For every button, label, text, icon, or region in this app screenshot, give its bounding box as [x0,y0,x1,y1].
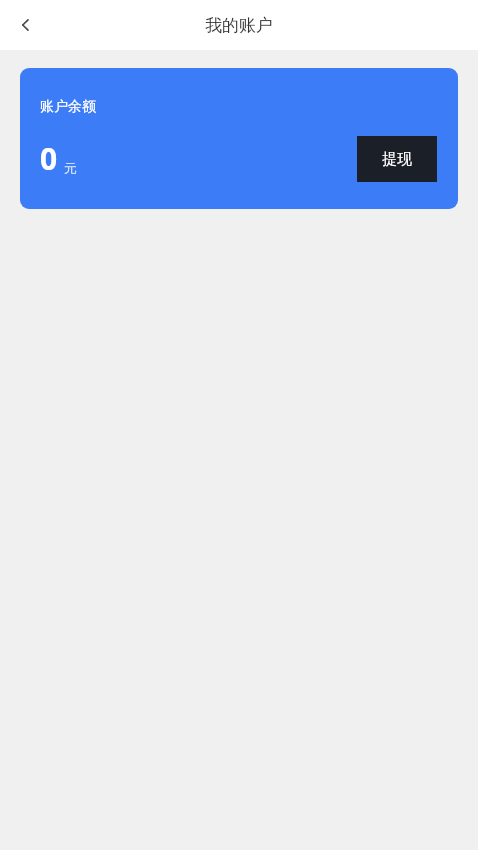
staticText: 我的账户 [205,15,273,36]
button[interactable]: 账户余额 [20,68,458,209]
staticText: 元 [64,160,77,176]
button[interactable]: 提现 [357,136,437,182]
button[interactable]: Back [0,0,52,50]
staticText: 提现 [382,150,412,169]
staticText: 账户余额 [40,98,96,116]
staticText: 0 [40,138,58,179]
